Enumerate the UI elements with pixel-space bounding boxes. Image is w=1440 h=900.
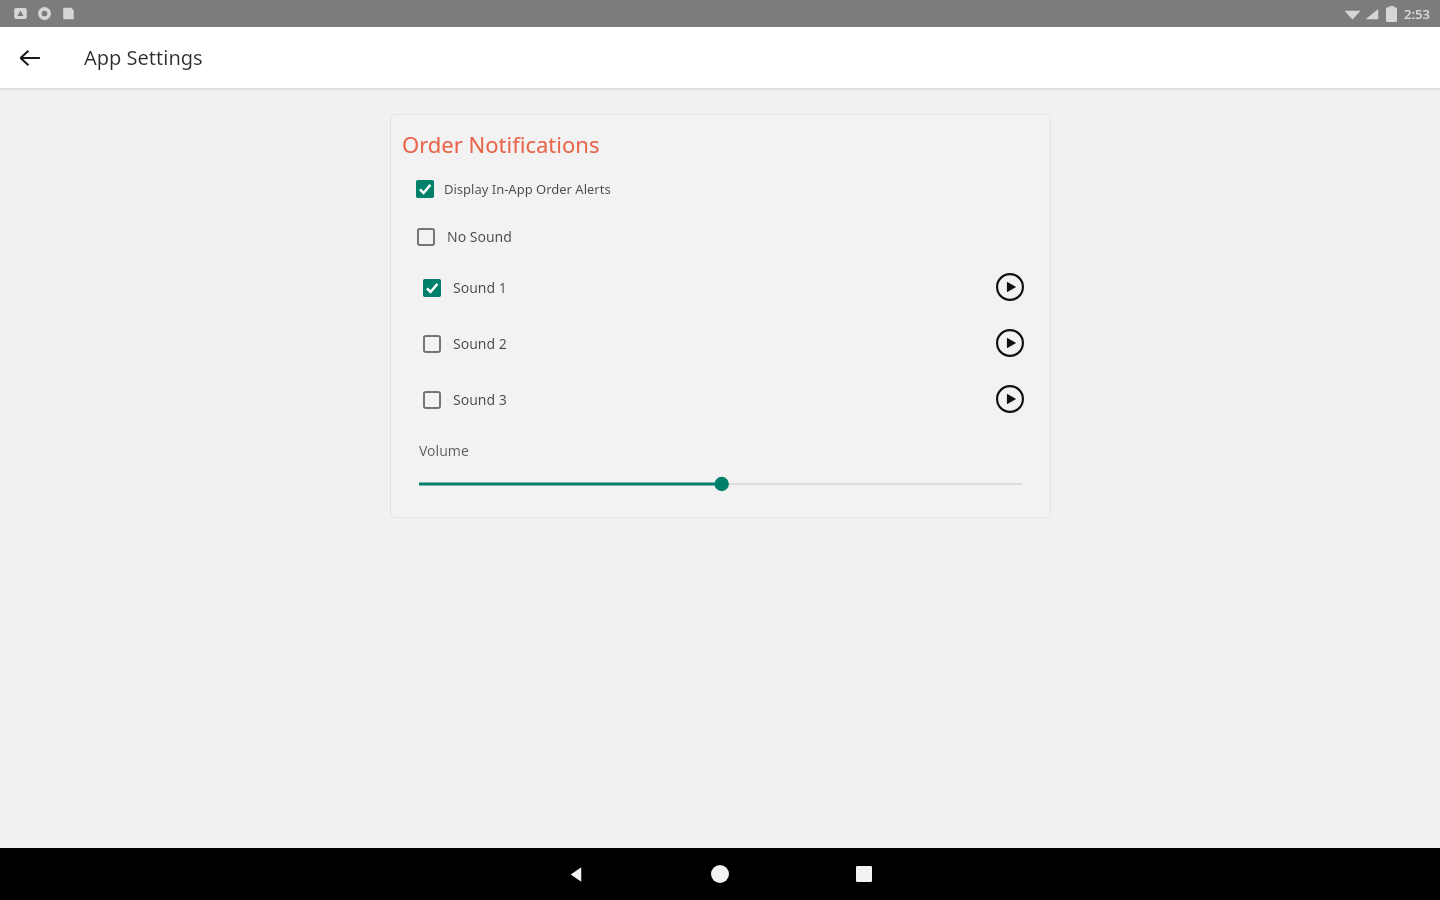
staticText: No Sound xyxy=(447,227,512,246)
button[interactable]: Play Sound 3 xyxy=(992,381,1028,417)
button[interactable]: Display In-App Order Alerts xyxy=(416,180,611,198)
staticText: Display In-App Order Alerts xyxy=(444,180,611,198)
staticText: 2:53 xyxy=(1404,5,1430,23)
staticText: Sound 1 xyxy=(453,278,507,297)
button[interactable]: Play Sound 1 xyxy=(992,269,1028,305)
staticText: Sound 2 xyxy=(453,334,507,353)
button[interactable]: No Sound xyxy=(417,227,512,246)
staticText: Sound 3 xyxy=(453,390,507,409)
button[interactable]: Home xyxy=(692,848,748,900)
staticText: Order Notifications xyxy=(402,129,600,159)
button[interactable]: Sound 1 xyxy=(423,278,992,297)
button[interactable]: Sound 2 xyxy=(423,334,992,353)
button[interactable]: Play Sound 2 xyxy=(992,325,1028,361)
staticText: App Settings xyxy=(84,44,203,71)
button[interactable]: Sound 3 xyxy=(423,390,992,409)
button[interactable]: Back xyxy=(548,848,604,900)
button[interactable]: Back xyxy=(6,34,54,82)
button[interactable]: Recent apps xyxy=(836,848,892,900)
button[interactable] xyxy=(419,474,1022,494)
staticText: Volume xyxy=(419,441,469,460)
